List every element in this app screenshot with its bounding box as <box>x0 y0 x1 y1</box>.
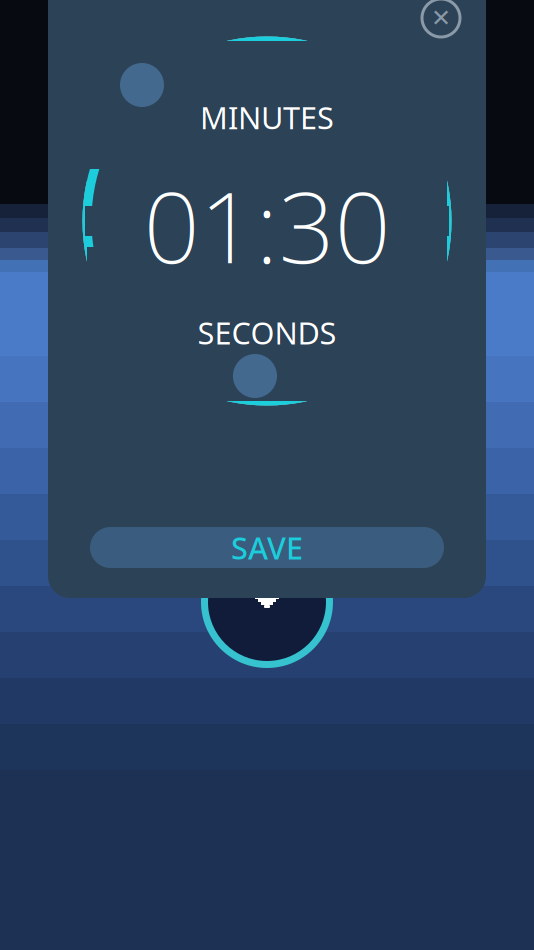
staticText: MINUTES <box>200 97 334 138</box>
button[interactable]: SAVE <box>90 527 444 568</box>
staticText: 01:30 <box>143 159 390 290</box>
staticText: SAVE <box>231 527 303 568</box>
staticText: SECONDS <box>197 312 336 353</box>
staticText: ✕ <box>431 4 451 32</box>
button[interactable]: Close <box>418 0 464 41</box>
